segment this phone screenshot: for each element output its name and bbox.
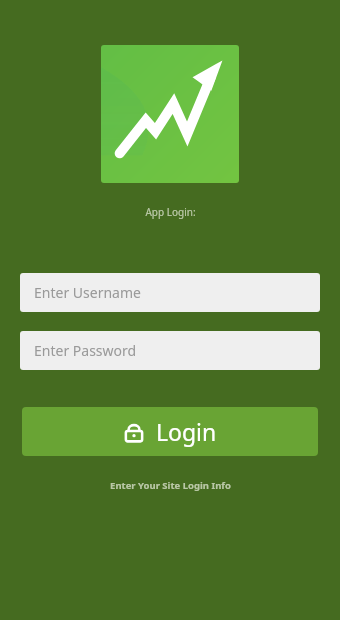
button[interactable]: Login [22, 407, 318, 456]
button[interactable]: Enter Your Site Login Info [110, 479, 231, 492]
button[interactable]: Enter Password [20, 331, 320, 370]
staticText: Enter Your Site Login Info [110, 479, 231, 492]
staticText: Enter Username [34, 283, 141, 302]
button[interactable]: Enter Username [20, 273, 320, 312]
staticText: Login [156, 416, 217, 447]
staticText: Enter Password [34, 341, 137, 360]
staticText: App Login: [145, 205, 196, 219]
